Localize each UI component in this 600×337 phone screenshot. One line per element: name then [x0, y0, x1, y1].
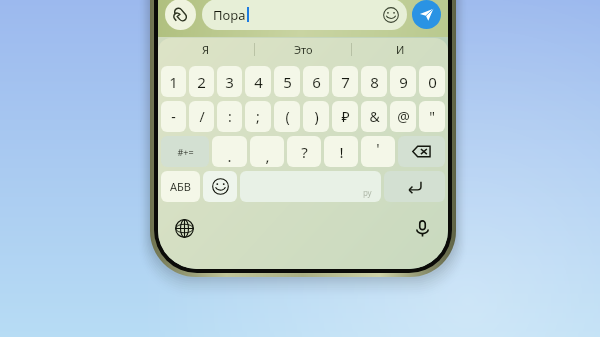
button[interactable]: 7: [332, 66, 358, 97]
staticText: &: [369, 107, 380, 126]
button[interactable]: Attach: [165, 0, 196, 30]
staticText: 2: [197, 72, 206, 92]
staticText: 0: [428, 72, 437, 92]
staticText: ,: [265, 146, 270, 166]
button[interactable]: Change language: [169, 213, 199, 243]
button[interactable]: ру: [240, 171, 381, 202]
button[interactable]: 9: [390, 66, 416, 97]
staticText: :: [228, 107, 232, 126]
button[interactable]: :: [217, 101, 242, 132]
button[interactable]: 3: [217, 66, 242, 97]
button[interactable]: #+=: [161, 136, 209, 167]
button[interactable]: !: [324, 136, 358, 167]
staticText: ?: [301, 142, 308, 162]
staticText: -: [171, 107, 176, 126]
button[interactable]: ": [419, 101, 445, 132]
button[interactable]: /: [189, 101, 214, 132]
staticText: 9: [399, 72, 408, 92]
staticText: Это: [294, 42, 313, 57]
staticText: 5: [283, 72, 292, 92]
staticText: #+=: [177, 146, 194, 158]
button[interactable]: 0: [419, 66, 445, 97]
staticText: .: [227, 146, 232, 166]
staticText: АБВ: [170, 179, 191, 194]
button[interactable]: @: [390, 101, 416, 132]
button[interactable]: 1: [161, 66, 186, 97]
staticText: ру: [363, 187, 372, 198]
button[interactable]: ?: [287, 136, 321, 167]
button[interactable]: 5: [274, 66, 300, 97]
staticText: Пора: [213, 6, 246, 24]
staticText: 8: [370, 72, 379, 92]
staticText: Я: [202, 42, 210, 57]
staticText: ₽: [341, 107, 350, 126]
button[interactable]: Emoji: [382, 6, 399, 23]
button[interactable]: -: [161, 101, 186, 132]
staticText: 7: [341, 72, 350, 92]
staticText: /: [199, 107, 205, 126]
button[interactable]: (: [274, 101, 300, 132]
button[interactable]: Send: [412, 0, 441, 29]
button[interactable]: Это: [255, 38, 351, 61]
button[interactable]: .: [212, 136, 247, 167]
staticText: ): [314, 107, 319, 126]
staticText: @: [397, 107, 410, 126]
staticText: 3: [225, 72, 234, 92]
staticText: ": [429, 107, 435, 126]
staticText: ;: [256, 107, 260, 126]
button[interactable]: Backspace: [398, 136, 445, 167]
staticText: И: [396, 42, 405, 57]
button[interactable]: &: [361, 101, 387, 132]
staticText: ': [376, 138, 380, 158]
button[interactable]: ,: [250, 136, 284, 167]
button[interactable]: 6: [303, 66, 329, 97]
button[interactable]: Пора: [202, 0, 407, 30]
staticText: (: [285, 107, 290, 126]
button[interactable]: И: [352, 38, 448, 61]
staticText: 4: [254, 72, 263, 92]
button[interactable]: Emoji: [203, 171, 237, 202]
staticText: 1: [169, 72, 178, 92]
button[interactable]: Voice input: [407, 213, 437, 243]
button[interactable]: 8: [361, 66, 387, 97]
button[interactable]: ): [303, 101, 329, 132]
button[interactable]: ₽: [332, 101, 358, 132]
staticText: !: [339, 142, 344, 162]
button[interactable]: 2: [189, 66, 214, 97]
button[interactable]: Enter: [384, 171, 445, 202]
button[interactable]: ;: [245, 101, 271, 132]
button[interactable]: Я: [158, 38, 254, 61]
button[interactable]: ': [361, 136, 395, 167]
staticText: 6: [312, 72, 321, 92]
button[interactable]: АБВ: [161, 171, 200, 202]
button[interactable]: 4: [245, 66, 271, 97]
